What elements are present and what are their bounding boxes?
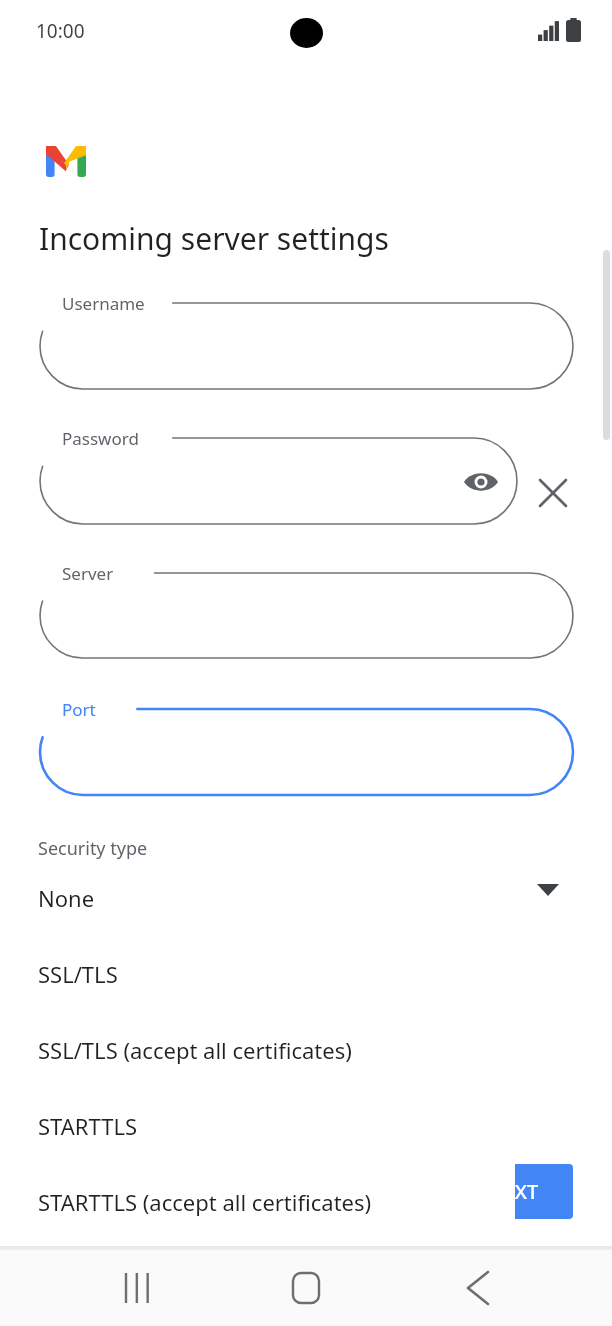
staticText: Incoming server settings [39, 218, 389, 259]
button[interactable]: SSL/TLS (accept all certificates) [20, 1012, 515, 1088]
staticText: 10:00 [36, 18, 85, 44]
button[interactable]: SSL/TLS [20, 936, 515, 1012]
staticText: Port [62, 698, 96, 721]
button[interactable]: Security type dropdown [526, 868, 570, 912]
staticText: Username [62, 292, 145, 315]
staticText: Password [62, 427, 139, 450]
button[interactable] [40, 303, 573, 389]
button[interactable] [40, 709, 573, 795]
staticText: SSL/TLS (accept all certificates) [38, 1035, 352, 1065]
button[interactable]: Home [272, 1250, 340, 1326]
button[interactable]: Clear [531, 471, 575, 515]
staticText: Security type [38, 836, 148, 861]
staticText: Server [62, 562, 114, 585]
button[interactable]: Show password [459, 460, 503, 504]
button[interactable]: STARTTLS [20, 1088, 515, 1164]
button[interactable]: None [20, 860, 515, 936]
staticText: None [38, 883, 95, 913]
button[interactable] [40, 438, 517, 524]
staticText: SSL/TLS [38, 959, 118, 989]
button[interactable] [40, 573, 573, 658]
staticText: STARTTLS [38, 1111, 138, 1141]
button[interactable]: Back [444, 1250, 512, 1326]
button[interactable]: Recent apps [104, 1250, 172, 1326]
button[interactable]: STARTTLS (accept all certificates) [20, 1164, 515, 1240]
staticText: NEXT [488, 1178, 539, 1205]
button[interactable]: NEXT [453, 1164, 573, 1219]
staticText: STARTTLS (accept all certificates) [38, 1187, 372, 1217]
